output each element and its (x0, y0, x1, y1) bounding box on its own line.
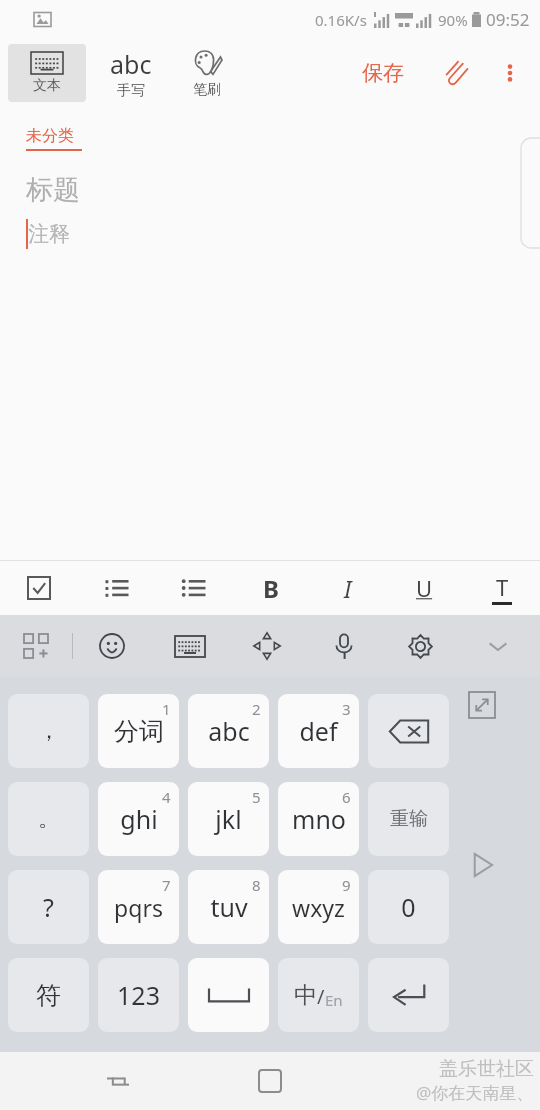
button[interactable]: check (0, 561, 78, 615)
staticText: 盖乐世社区 (439, 1057, 534, 1081)
staticText: ghi (120, 802, 158, 836)
staticText: wxyz (292, 892, 345, 923)
staticText: 2 (252, 699, 261, 719)
staticText: ? (43, 890, 54, 924)
staticText: B (263, 572, 279, 605)
staticText: abc (110, 47, 152, 81)
button[interactable]: lang (278, 958, 359, 1032)
button[interactable]: abc (94, 38, 168, 108)
button[interactable]: More options (490, 53, 530, 93)
staticText: 5 (252, 787, 261, 807)
button[interactable]: 7 (98, 870, 179, 944)
staticText: 文本 (33, 77, 61, 95)
button[interactable]: T (463, 561, 540, 615)
staticText: 9 (342, 875, 351, 895)
button[interactable]: 符 (8, 958, 89, 1032)
button[interactable]: 8 (188, 870, 269, 944)
staticText: tuv (210, 890, 248, 924)
button[interactable]: 5 (188, 782, 269, 856)
staticText: 0 (401, 890, 416, 924)
staticText: 123 (117, 978, 160, 1012)
staticText: 7 (162, 875, 171, 895)
button[interactable]: 文本 (8, 44, 86, 102)
staticText: 09:52 (486, 8, 530, 31)
staticText: jkl (215, 802, 242, 836)
staticText: 注释 (28, 221, 70, 247)
button[interactable]: del (368, 694, 449, 768)
staticText: 中 (294, 981, 317, 1010)
staticText: @你在天南星、 (416, 1081, 534, 1104)
staticText: 保存 (362, 60, 404, 86)
staticText: 8 (252, 875, 261, 895)
staticText: 手写 (117, 82, 145, 100)
staticText: En (325, 990, 343, 1010)
button[interactable]: 未分类 (26, 126, 82, 151)
staticText: 90% (438, 10, 468, 30)
button[interactable]: ， (8, 694, 89, 768)
button[interactable]: 笔刷 (170, 38, 244, 108)
staticText: mno (292, 802, 346, 836)
staticText: abc (208, 714, 250, 748)
button[interactable]: enter (368, 958, 449, 1032)
staticText: T (496, 572, 509, 602)
button[interactable]: 1 (98, 694, 179, 768)
button[interactable]: U (386, 561, 463, 615)
button[interactable]: Attach (436, 53, 476, 93)
staticText: 符 (36, 980, 61, 1011)
staticText: 4 (162, 787, 171, 807)
staticText: / (317, 983, 325, 1010)
button[interactable]: B (232, 561, 309, 615)
button[interactable]: 3 (278, 694, 359, 768)
button[interactable]: Settings (382, 615, 459, 677)
button[interactable]: 2 (188, 694, 269, 768)
button[interactable]: 9 (278, 870, 359, 944)
staticText: 重输 (390, 807, 428, 831)
staticText: 0.16K/s (315, 10, 367, 30)
button[interactable]: Home (248, 1059, 292, 1103)
button[interactable]: Emoji (73, 615, 151, 677)
staticText: pqrs (114, 892, 163, 923)
button[interactable]: Keyboard (151, 615, 228, 677)
button[interactable]: 保存 (352, 52, 414, 94)
button[interactable]: bullet (155, 561, 232, 615)
staticText: 3 (342, 699, 351, 719)
staticText: I (344, 573, 352, 604)
staticText: 6 (342, 787, 351, 807)
button[interactable]: ? (8, 870, 89, 944)
button[interactable]: Arrows (228, 615, 305, 677)
staticText: 标题 (26, 173, 80, 207)
button[interactable]: Collapse (459, 615, 536, 677)
staticText: U (416, 573, 433, 603)
staticText: 。 (38, 805, 60, 833)
button[interactable]: Toolbox (0, 615, 72, 677)
staticText: 笔刷 (193, 81, 221, 99)
staticText: ， (38, 717, 60, 745)
button[interactable]: Resize keyboard (466, 689, 498, 721)
button[interactable]: Voice (305, 615, 382, 677)
staticText: def (299, 714, 338, 748)
button[interactable]: 0 (368, 870, 449, 944)
button[interactable]: 重输 (368, 782, 449, 856)
button[interactable]: space (188, 958, 269, 1032)
button[interactable]: 。 (8, 782, 89, 856)
button[interactable]: 6 (278, 782, 359, 856)
button[interactable]: Play (462, 845, 502, 885)
staticText: 分词 (114, 716, 164, 747)
button[interactable]: Recents (96, 1059, 140, 1103)
button[interactable]: 123 (98, 958, 179, 1032)
staticText: 未分类 (26, 126, 74, 146)
button[interactable]: numlist (78, 561, 155, 615)
staticText: 1 (162, 699, 171, 719)
button[interactable]: I (309, 561, 386, 615)
button[interactable]: 4 (98, 782, 179, 856)
